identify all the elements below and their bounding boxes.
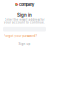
button[interactable]: company [15, 2, 34, 7]
staticText: Sign up [18, 42, 30, 46]
staticText: Forgot your password? [3, 34, 36, 38]
staticText: Enter the email address for [4, 18, 44, 22]
staticText: your account to continue. [4, 21, 45, 24]
staticText: Sign in [17, 12, 32, 18]
button[interactable]: Sign up [18, 42, 30, 46]
button[interactable]: Forgot your password? [3, 34, 36, 38]
staticText: company [19, 2, 34, 7]
